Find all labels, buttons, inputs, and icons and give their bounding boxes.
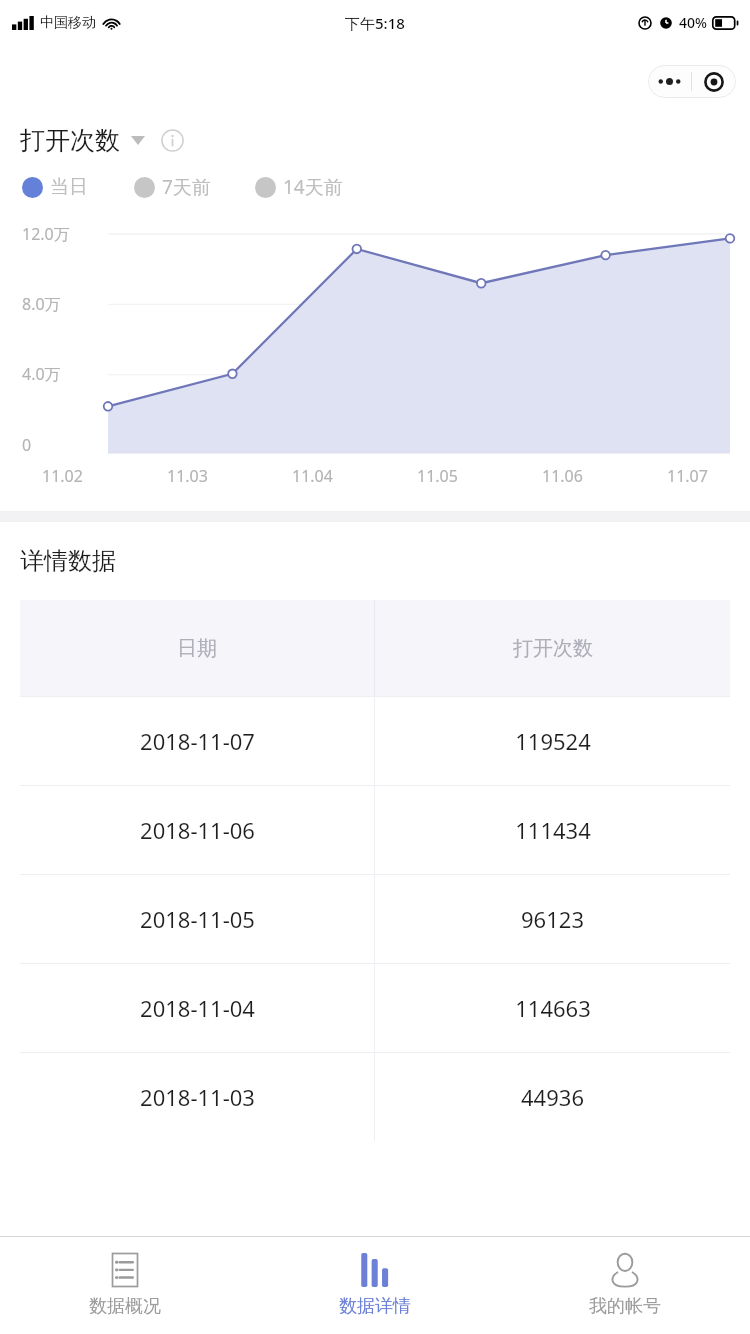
staticText: 当日 (50, 175, 88, 199)
staticText: 11.04 (292, 465, 333, 487)
button[interactable]: Info (159, 127, 185, 153)
staticText: 2018-11-07 (140, 726, 255, 756)
staticText: 2018-11-03 (140, 1082, 255, 1112)
staticText: 我的帐号 (589, 1295, 661, 1318)
button[interactable]: 2018-11-05 (20, 875, 730, 963)
staticText: 2018-11-04 (140, 993, 255, 1023)
staticText: 14天前 (283, 174, 343, 200)
button[interactable]: 14天前 (255, 174, 343, 200)
staticText: 中国移动 (40, 14, 96, 32)
staticText: 11.07 (667, 465, 708, 487)
staticText: 打开次数 (20, 125, 120, 156)
staticText: 96123 (521, 904, 584, 934)
staticText: 12.0万 (22, 223, 70, 245)
staticText: 0 (22, 434, 32, 456)
staticText: 2018-11-05 (140, 904, 255, 934)
staticText: 11.05 (417, 465, 458, 487)
staticText: 打开次数 (513, 636, 593, 661)
button[interactable]: More (648, 65, 691, 98)
staticText: 40% (679, 13, 707, 32)
staticText: 11.02 (42, 465, 83, 487)
button[interactable]: 2018-11-07 (20, 697, 730, 785)
staticText: 114663 (515, 993, 591, 1023)
staticText: 4.0万 (22, 363, 61, 385)
button[interactable]: 打开次数 (20, 117, 185, 163)
staticText: 详情数据 (20, 546, 116, 576)
staticText: 11.06 (542, 465, 583, 487)
button[interactable]: 我的帐号 (500, 1237, 750, 1334)
button[interactable]: 当日 (22, 175, 88, 199)
staticText: 数据详情 (339, 1295, 411, 1318)
button[interactable]: 2018-11-04 (20, 964, 730, 1052)
button[interactable]: 7天前 (134, 174, 211, 200)
button[interactable]: 2018-11-03 (20, 1053, 730, 1141)
staticText: 数据概况 (89, 1295, 161, 1318)
staticText: 44936 (521, 1082, 584, 1112)
button[interactable]: 数据概况 (0, 1237, 250, 1334)
button[interactable]: Close (692, 65, 736, 98)
staticText: 119524 (515, 726, 591, 756)
staticText: 7天前 (162, 174, 211, 200)
staticText: 11.03 (167, 465, 208, 487)
staticText: 下午5:18 (345, 13, 405, 33)
staticText: 2018-11-06 (140, 815, 255, 845)
staticText: 8.0万 (22, 293, 61, 315)
button[interactable]: 数据详情 (250, 1237, 500, 1334)
staticText: 日期 (177, 636, 217, 661)
staticText: 111434 (515, 815, 591, 845)
button[interactable]: 2018-11-06 (20, 786, 730, 874)
